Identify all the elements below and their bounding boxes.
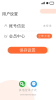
- staticText: 登录即表示同意用户协议与隐私政策: [20, 94, 36, 96]
- staticText: 立即开通: [38, 34, 50, 38]
- staticText: 账号信息: [9, 23, 25, 28]
- staticText: 保存设置: [20, 48, 36, 53]
- button[interactable]: QQ登录: [31, 81, 37, 87]
- staticText: 会员中心: [9, 34, 25, 38]
- staticText: 未登录: [43, 24, 52, 28]
- staticText: 用户设置: [2, 11, 18, 16]
- button[interactable]: 微信登录: [19, 81, 25, 87]
- staticText: 其他登录方式: [19, 89, 37, 92]
- button[interactable]: 账号信息: [2, 21, 54, 31]
- button[interactable]: 保存设置: [8, 47, 48, 54]
- button[interactable]: 会员中心: [2, 31, 54, 41]
